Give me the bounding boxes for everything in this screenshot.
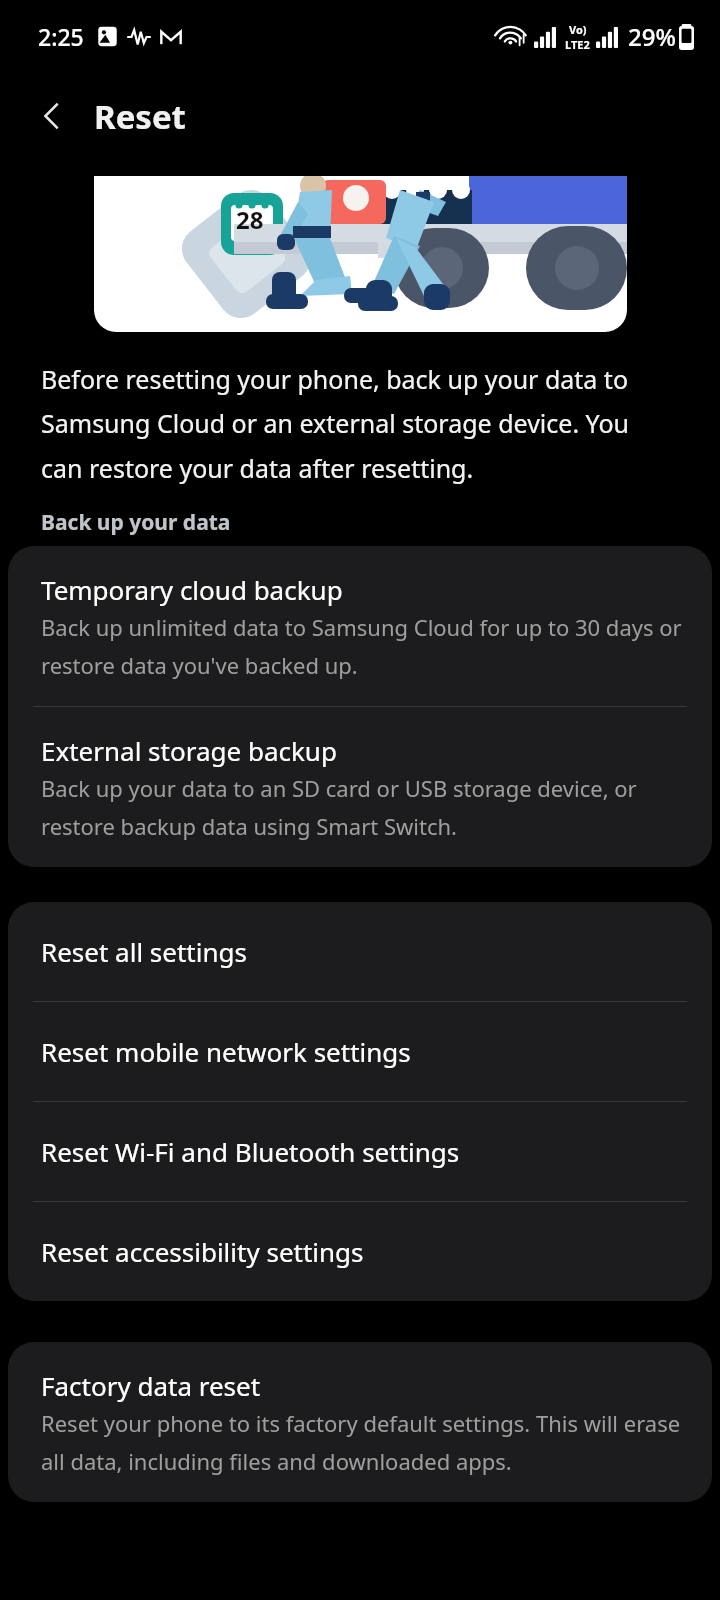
staticText: 2:25 (38, 21, 84, 52)
staticText: Reset mobile network settings (41, 1034, 411, 1069)
staticText: Reset (94, 94, 186, 139)
button[interactable]: Factory data reset (8, 1342, 712, 1502)
button[interactable]: Reset accessibility settings (8, 1202, 712, 1301)
staticText: Before resetting your phone, back up you… (41, 362, 660, 486)
staticText: Back up your data (41, 508, 720, 537)
staticText: LTE2 (565, 37, 590, 52)
staticText: Factory data reset (41, 1368, 261, 1403)
staticText: Reset your phone to its factory default … (41, 1408, 682, 1476)
staticText: Reset Wi-Fi and Bluetooth settings (41, 1134, 460, 1169)
button[interactable]: Back (22, 86, 82, 146)
staticText: Back up unlimited data to Samsung Cloud … (41, 612, 682, 680)
button[interactable]: Reset mobile network settings (8, 1002, 712, 1101)
staticText: Back up your data to an SD card or USB s… (41, 773, 682, 841)
staticText: 28 (236, 203, 264, 236)
staticText: Reset all settings (41, 934, 247, 969)
staticText: Vo) (569, 22, 587, 37)
button[interactable]: Temporary cloud backup (8, 546, 712, 706)
button[interactable]: Reset all settings (8, 902, 712, 1001)
staticText: Temporary cloud backup (41, 572, 343, 607)
staticText: Reset accessibility settings (41, 1234, 364, 1269)
staticText: External storage backup (41, 733, 337, 768)
staticText: 29% (628, 20, 676, 53)
button[interactable]: Reset Wi-Fi and Bluetooth settings (8, 1102, 712, 1201)
button[interactable]: External storage backup (8, 707, 712, 867)
